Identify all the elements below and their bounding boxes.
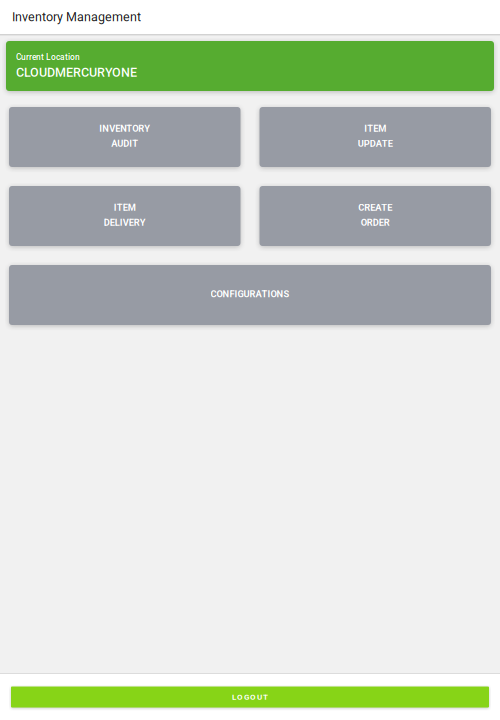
button[interactable]: INVENTORY <box>9 107 240 167</box>
staticText: Inventory Management <box>12 10 141 24</box>
staticText: ORDER <box>361 217 390 228</box>
staticText: AUDIT <box>111 138 138 149</box>
button[interactable]: L O G O U T <box>11 686 489 707</box>
staticText: ITEM <box>114 202 136 213</box>
staticText: CLOUDMERCURYONE <box>16 65 137 80</box>
staticText: INVENTORY <box>99 123 150 134</box>
button[interactable]: ITEM <box>9 186 240 246</box>
staticText: UPDATE <box>358 138 393 149</box>
button[interactable]: ITEM <box>259 107 491 167</box>
staticText: Current Location <box>16 52 80 62</box>
button[interactable]: CREATE <box>259 186 491 246</box>
staticText: CONFIGURATIONS <box>210 288 289 299</box>
button[interactable]: CONFIGURATIONS <box>9 265 491 325</box>
staticText: ITEM <box>364 123 386 134</box>
staticText: DELIVERY <box>104 217 146 228</box>
staticText: CREATE <box>358 202 392 213</box>
staticText: L O G O U T <box>232 692 268 702</box>
